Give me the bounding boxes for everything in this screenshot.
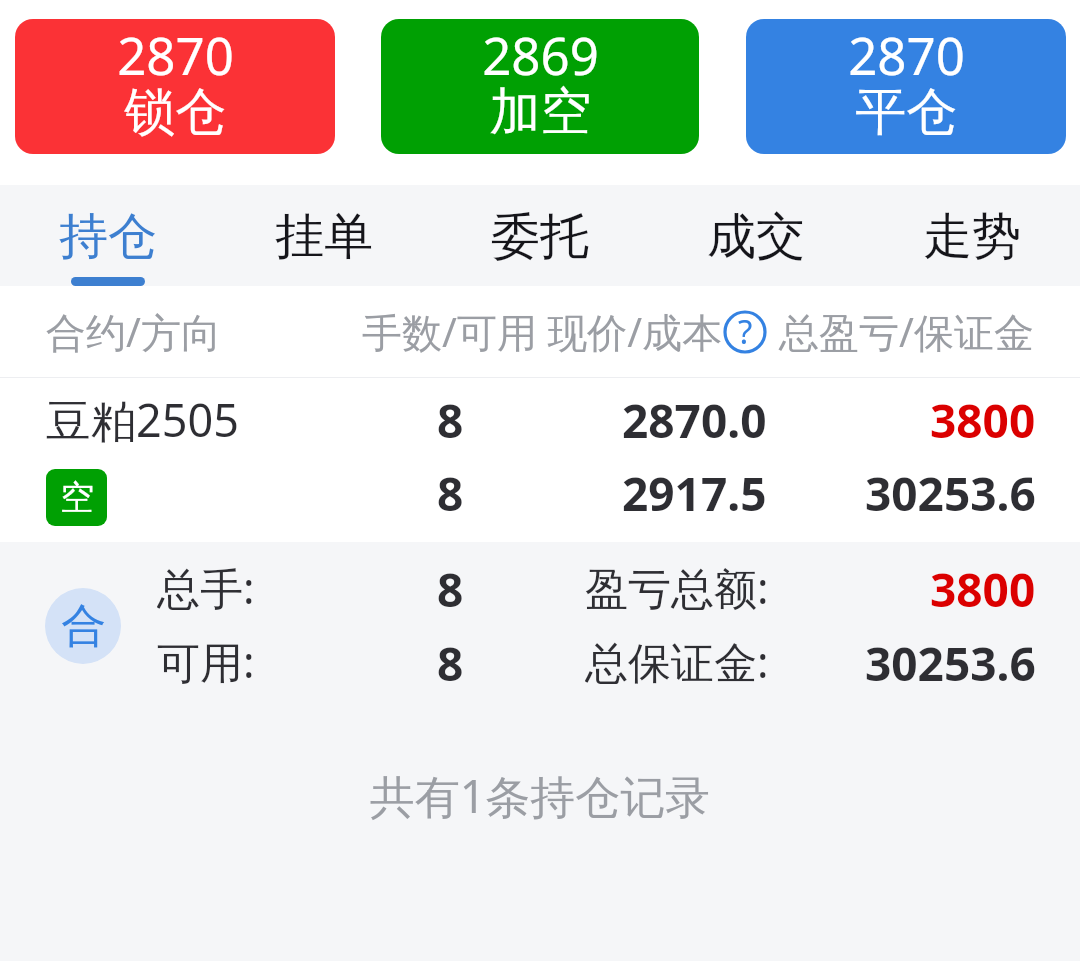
staticText: 8: [437, 389, 464, 447]
button[interactable]: 持仓: [0, 185, 216, 286]
staticText: 2870 平仓: [848, 20, 965, 144]
button[interactable]: 走势: [864, 185, 1080, 286]
staticText: 委托: [491, 206, 589, 268]
button[interactable]: 豆粕2505: [0, 378, 1080, 542]
staticText: 8: [437, 632, 464, 690]
staticText: 走势: [923, 206, 1021, 268]
button[interactable]: 2870 锁仓: [15, 19, 335, 154]
staticText: ?: [738, 309, 753, 353]
button[interactable]: 挂单: [216, 185, 432, 286]
staticText: 2870 锁仓: [117, 20, 234, 144]
button[interactable]: 2869 加空: [381, 19, 699, 154]
staticText: 共有1条持仓记录: [0, 765, 1080, 826]
staticText: 总保证金:: [585, 632, 769, 690]
staticText: 合约/方向: [46, 304, 221, 359]
staticText: 空: [60, 476, 94, 519]
staticText: 总盈亏/保证金: [779, 304, 1034, 359]
staticText: 30253.6: [865, 462, 1036, 520]
button[interactable]: 成交: [648, 185, 864, 286]
staticText: 2917.5: [622, 462, 767, 520]
staticText: 合: [61, 598, 106, 655]
button[interactable]: 合: [0, 542, 1080, 718]
staticText: 3800: [930, 389, 1036, 447]
staticText: 豆粕2505: [46, 389, 239, 447]
staticText: 2869 加空: [482, 20, 599, 144]
button[interactable]: Help: [723, 310, 767, 354]
staticText: 成交: [707, 206, 805, 268]
staticText: 2870.0: [622, 389, 767, 447]
staticText: 3800: [930, 558, 1036, 616]
button[interactable]: 2870 平仓: [746, 19, 1066, 154]
staticText: 8: [437, 558, 464, 616]
staticText: 持仓: [59, 206, 157, 268]
staticText: 挂单: [275, 206, 373, 268]
staticText: 30253.6: [865, 632, 1036, 690]
staticText: 盈亏总额:: [585, 558, 769, 616]
staticText: 可用:: [157, 632, 255, 690]
staticText: 总手:: [157, 558, 255, 616]
staticText: 手数/可用 现价/成本: [362, 304, 723, 359]
button[interactable]: 委托: [432, 185, 648, 286]
staticText: 8: [437, 462, 464, 520]
